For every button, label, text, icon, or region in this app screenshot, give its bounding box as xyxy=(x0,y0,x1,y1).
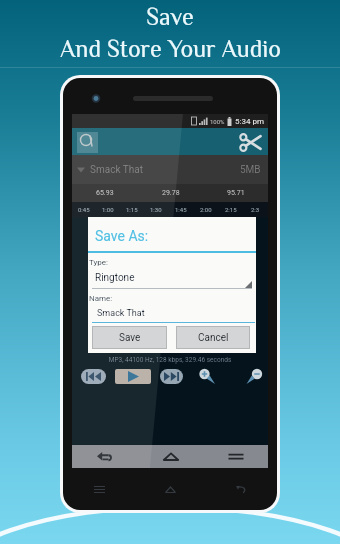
staticText: 1:45 xyxy=(175,206,187,213)
button[interactable]: Cancel xyxy=(176,326,250,349)
staticText: 65.93 xyxy=(96,189,114,197)
staticText: 29.78 xyxy=(162,189,180,197)
button[interactable]: Ringtone xyxy=(92,270,252,289)
staticText: 95.71 xyxy=(227,189,245,197)
staticText: Type: xyxy=(89,258,108,267)
staticText: And Store Your Audio xyxy=(60,35,281,62)
button[interactable]: Recents xyxy=(203,445,268,468)
button[interactable]: Home xyxy=(135,472,206,506)
button[interactable]: Previous xyxy=(81,369,106,384)
staticText: 5MB xyxy=(240,164,261,176)
staticText: 2:00 xyxy=(200,206,212,213)
staticText: 2:15 xyxy=(225,206,237,213)
button[interactable]: Back xyxy=(206,472,277,506)
staticText: MP3, 44100 Hz, 128 kbps, 329.46 seconds xyxy=(72,356,268,364)
staticText: 5:34 pm xyxy=(235,117,264,126)
button[interactable]: Cut xyxy=(237,129,263,155)
button[interactable]: Zoom in xyxy=(197,367,219,385)
button[interactable]: Cut xyxy=(72,128,268,155)
button[interactable]: Save xyxy=(92,326,167,349)
staticText: 1:15 xyxy=(126,206,138,213)
button[interactable]: Menu xyxy=(63,472,135,506)
staticText: Save xyxy=(146,3,194,30)
button[interactable]: Smack That xyxy=(92,305,255,323)
staticText: Cancel xyxy=(198,332,229,344)
button[interactable]: Zoom out xyxy=(243,367,265,385)
button[interactable]: Next xyxy=(160,369,183,384)
staticText: Name: xyxy=(89,294,113,303)
button[interactable]: Home xyxy=(138,445,203,468)
staticText: 2:3 xyxy=(251,206,260,213)
button[interactable]: Back xyxy=(72,445,138,468)
staticText: Save As: xyxy=(95,228,149,244)
button[interactable]: Smack That xyxy=(72,155,268,184)
staticText: 0:45 xyxy=(78,206,90,213)
staticText: Ringtone xyxy=(95,272,135,284)
staticText: 1:30 xyxy=(150,206,162,213)
staticText: 100% xyxy=(210,118,225,125)
button[interactable]: Play xyxy=(115,369,151,384)
staticText: Smack That xyxy=(97,308,145,319)
staticText: Smack That xyxy=(90,164,143,176)
staticText: 1:00 xyxy=(102,206,114,213)
staticText: Save xyxy=(119,332,141,344)
